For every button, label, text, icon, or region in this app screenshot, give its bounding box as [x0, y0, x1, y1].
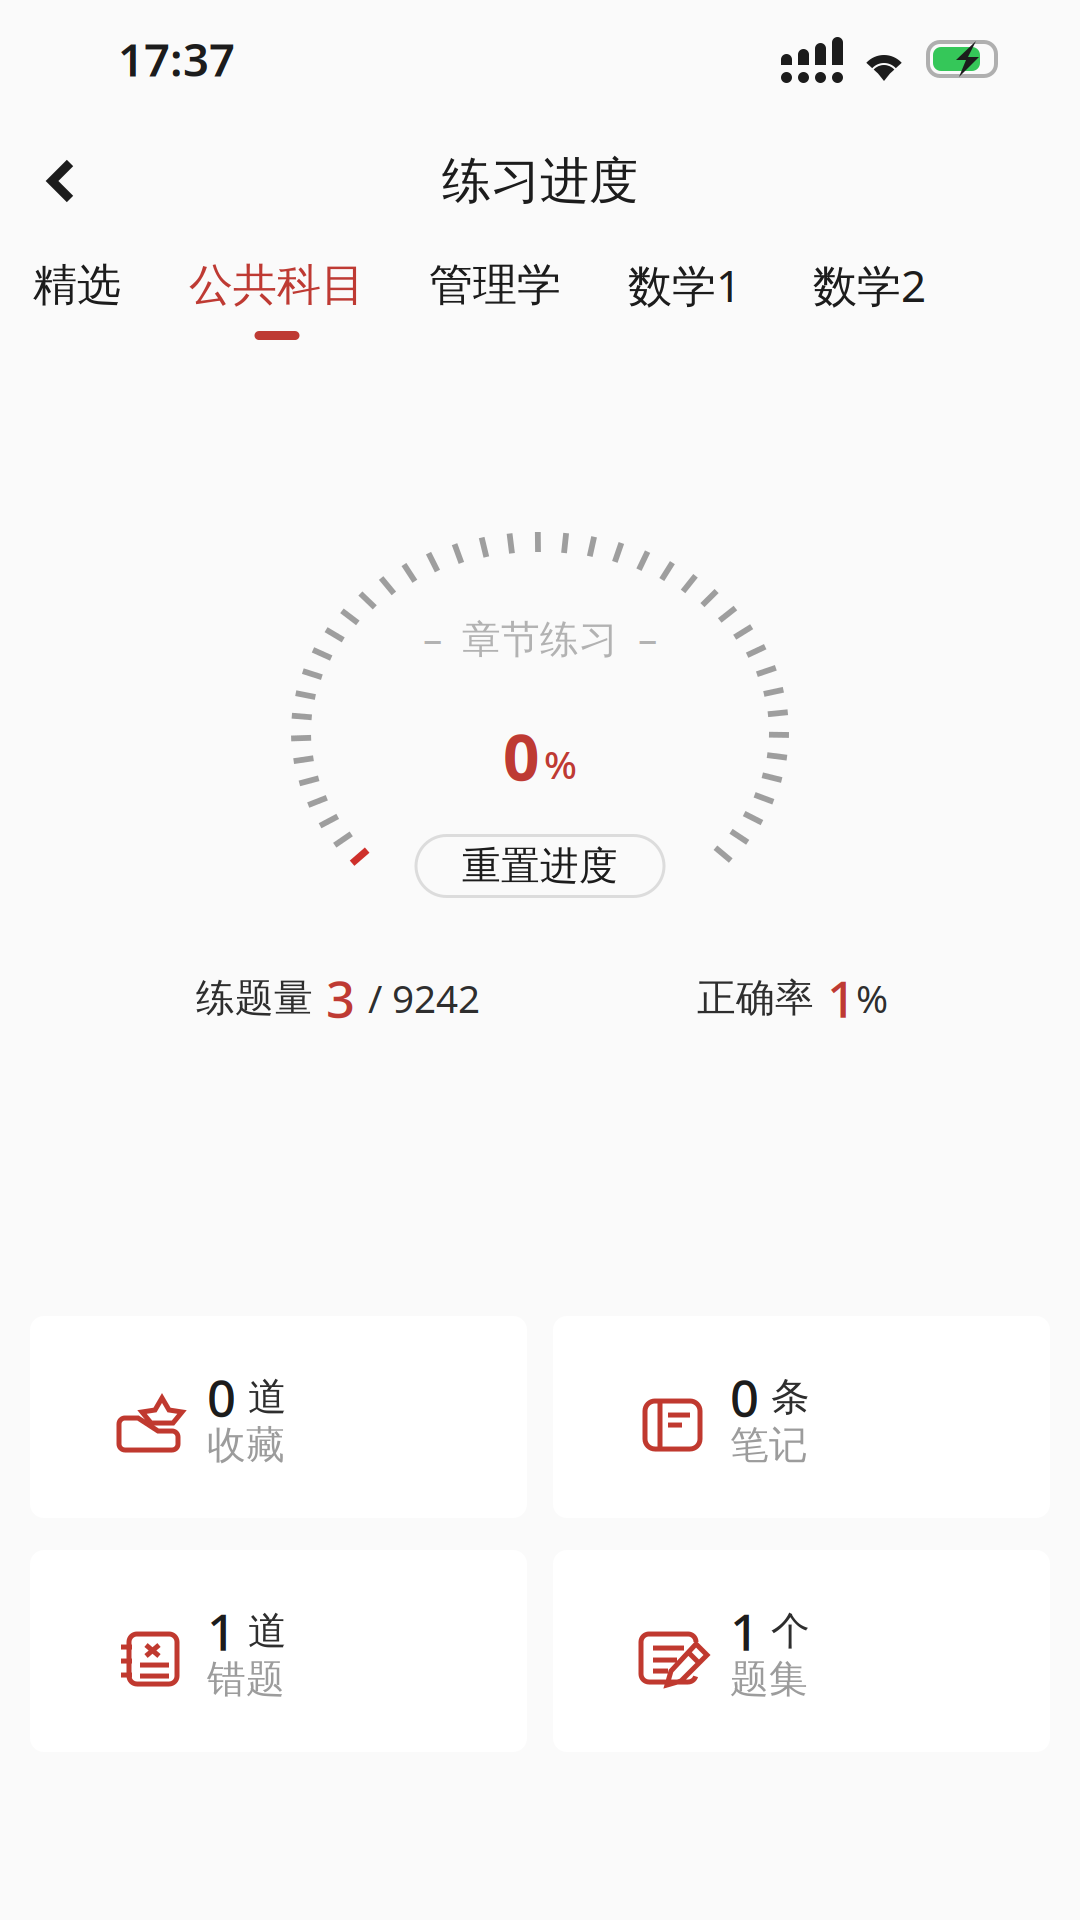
- button[interactable]: 精选: [33, 246, 121, 352]
- staticText: 1: [814, 964, 856, 1032]
- button[interactable]: 0: [30, 1316, 527, 1518]
- staticText: 管理学: [429, 258, 561, 312]
- staticText: %: [544, 738, 577, 790]
- staticText: 错题: [207, 1655, 285, 1703]
- staticText: 公共科目: [189, 258, 365, 312]
- staticText: 1: [207, 1597, 236, 1665]
- button[interactable]: 管理学: [429, 246, 561, 352]
- button[interactable]: 数学1: [628, 244, 741, 354]
- staticText: %: [856, 972, 888, 1024]
- staticText: 重置进度: [462, 842, 618, 890]
- staticText: 数学2: [813, 256, 926, 314]
- staticText: 0: [207, 1363, 236, 1431]
- staticText: 条: [759, 1373, 810, 1421]
- staticText: 0: [730, 1363, 759, 1431]
- staticText: 1: [730, 1597, 759, 1665]
- staticText: 数学1: [628, 256, 741, 314]
- staticText: 道: [236, 1373, 287, 1421]
- staticText: 精选: [33, 258, 121, 312]
- staticText: / 9242: [368, 972, 480, 1024]
- staticText: 正确率: [697, 974, 814, 1022]
- staticText: 3: [313, 964, 368, 1032]
- staticText: 练习进度: [442, 151, 638, 211]
- staticText: 练题量: [196, 974, 313, 1022]
- button[interactable]: 1: [30, 1550, 527, 1752]
- staticText: 17:37: [118, 29, 235, 89]
- staticText: 笔记: [730, 1421, 808, 1469]
- staticText: 个: [759, 1607, 810, 1655]
- staticText: 道: [236, 1607, 287, 1655]
- button[interactable]: 1: [553, 1550, 1050, 1752]
- button[interactable]: 0: [553, 1316, 1050, 1518]
- button[interactable]: Back: [0, 137, 108, 225]
- staticText: – 章节练习 –: [423, 612, 657, 664]
- button[interactable]: 公共科目: [189, 246, 365, 352]
- staticText: 收藏: [207, 1421, 285, 1469]
- staticText: 0: [503, 713, 540, 798]
- button[interactable]: 数学2: [813, 244, 926, 354]
- staticText: 题集: [730, 1655, 808, 1703]
- button[interactable]: 重置进度: [416, 835, 664, 896]
